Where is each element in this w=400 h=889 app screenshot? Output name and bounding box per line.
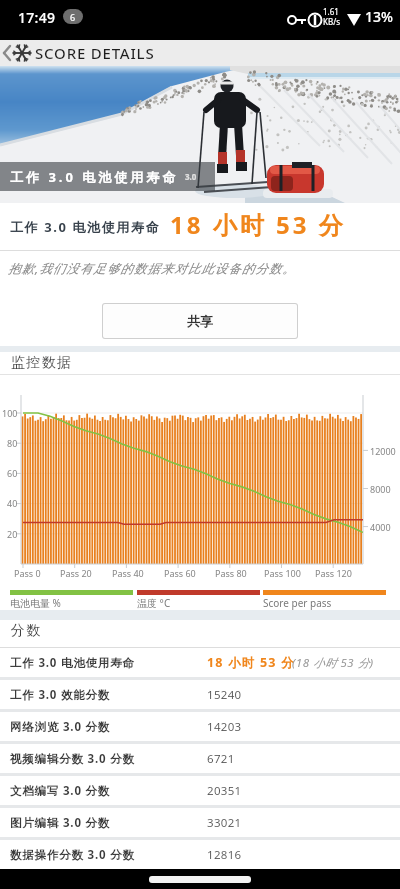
staticText: Pass 20 [60, 567, 92, 579]
staticText: 13% [365, 7, 393, 26]
staticText: 18 小时 53 分 [170, 208, 346, 241]
staticText: 18 小时 53 分 [207, 654, 295, 671]
staticText: 视频编辑分数 3.0 分数 [10, 751, 135, 767]
staticText: 33021 [207, 815, 242, 831]
staticText: 温度 °C [137, 596, 171, 610]
staticText: 12816 [207, 847, 242, 863]
staticText: Pass 120 [315, 567, 352, 579]
staticText: 工作 3.0 效能分数 [10, 687, 111, 703]
staticText: 3.0 [185, 171, 197, 182]
staticText: 80 [7, 437, 18, 449]
button[interactable]: 数据操作分数 3.0 分数 [0, 840, 400, 869]
staticText: 数据操作分数 3.0 分数 [10, 847, 135, 863]
staticText: 60 [7, 467, 18, 479]
button[interactable]: 工作 3.0 电池使用寿命 [0, 648, 400, 677]
button[interactable]: 视频编辑分数 3.0 分数 [0, 744, 400, 773]
staticText: 文档编写 3.0 分数 [10, 783, 111, 799]
staticText: (18 小时 53 分) [292, 655, 374, 671]
staticText: 15240 [207, 687, 242, 703]
button[interactable]: 工作 3.0 效能分数 [0, 680, 400, 709]
staticText: 工作 3.0 电池使用寿命 [10, 168, 179, 186]
button[interactable]: 文档编写 3.0 分数 [0, 776, 400, 805]
staticText: 100 [2, 407, 18, 419]
staticText: Pass 60 [164, 567, 196, 579]
staticText: 共享 [187, 313, 213, 329]
staticText: 监控数据 [10, 354, 72, 372]
button[interactable]: 共享 [103, 304, 297, 338]
staticText: Pass 0 [14, 567, 41, 579]
staticText: Pass 40 [112, 567, 144, 579]
staticText: Pass 100 [264, 567, 301, 579]
staticText: 分数 [10, 622, 41, 640]
staticText: 抱歉,我们没有足够的数据来对比此设备的分数。 [8, 260, 296, 277]
staticText: 20351 [207, 783, 242, 799]
staticText: 12000 [370, 445, 396, 457]
staticText: Pass 80 [215, 567, 247, 579]
staticText: 工作 3.0 电池使用寿命 [10, 655, 135, 671]
staticText: 20 [7, 528, 18, 540]
staticText: 40 [7, 497, 18, 509]
button[interactable]: 网络浏览 3.0 分数 [0, 712, 400, 741]
staticText: 工作 3.0 电池使用寿命 [10, 218, 161, 236]
button[interactable]: 图片编辑 3.0 分数 [0, 808, 400, 837]
staticText: KB/s [323, 16, 340, 27]
staticText: 网络浏览 3.0 分数 [10, 719, 111, 735]
staticText: 6 [70, 11, 76, 23]
staticText: 4000 [370, 521, 391, 533]
staticText: Score per pass [263, 596, 332, 610]
staticText: 8000 [370, 483, 391, 495]
staticText: 14203 [207, 719, 242, 735]
staticText: 电池电量 % [10, 596, 61, 610]
button[interactable]: SCORE DETAILS [0, 40, 400, 66]
staticText: 图片编辑 3.0 分数 [10, 815, 111, 831]
staticText: SCORE DETAILS [35, 43, 155, 63]
staticText: 17:49 [18, 8, 56, 27]
staticText: 6721 [207, 751, 235, 767]
staticText: 1.61 [323, 6, 339, 17]
